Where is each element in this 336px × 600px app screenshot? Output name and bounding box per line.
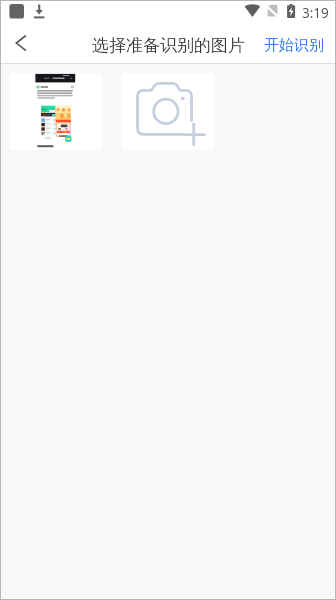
button[interactable]: Add photo [121,73,215,150]
button[interactable] [9,73,102,150]
button[interactable]: 开始识别 [254,25,336,63]
staticText: 开始识别 [264,36,324,55]
staticText: 3:19 [302,4,329,22]
staticText: 选择准备识别的图片 [92,35,245,56]
button[interactable]: Back [3,25,39,61]
